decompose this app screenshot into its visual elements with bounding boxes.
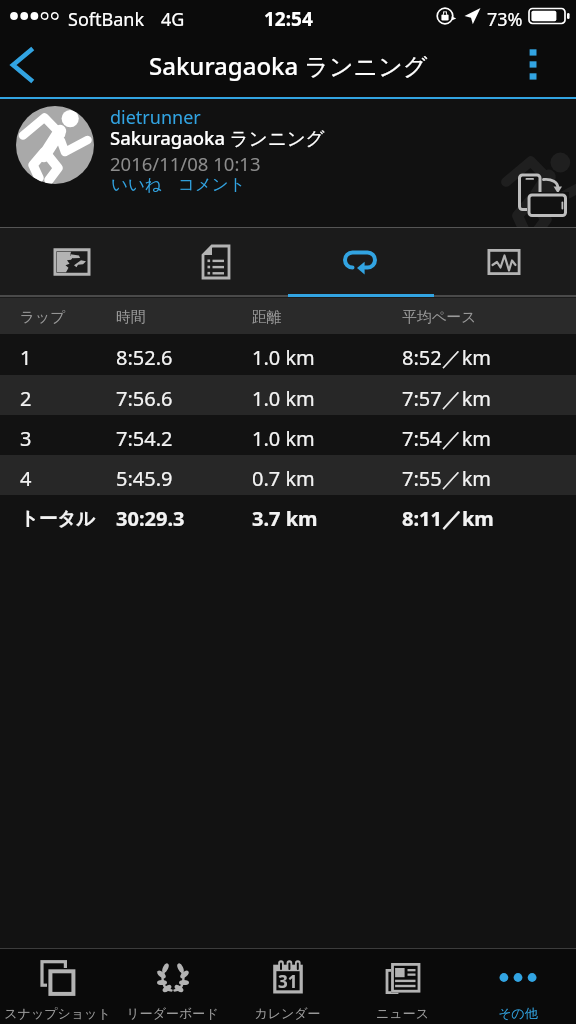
staticText: スナップショット — [4, 1005, 111, 1021]
staticText: 7:56.6 — [116, 385, 173, 412]
staticText: Sakuragaoka ランニング — [149, 49, 428, 82]
staticText: 73% — [487, 7, 523, 32]
staticText: その他 — [498, 1005, 538, 1021]
button[interactable]: Rotate screen — [516, 172, 570, 220]
staticText: リーダーボード — [126, 1005, 219, 1021]
button[interactable]: その他 — [460, 949, 575, 1024]
staticText: 7:54／km — [402, 425, 492, 452]
staticText: SoftBank — [68, 7, 144, 32]
button[interactable]: Laps — [288, 228, 432, 294]
button[interactable]: More options — [505, 36, 561, 97]
staticText: 4 — [20, 465, 32, 492]
button[interactable]: Summary — [144, 228, 288, 294]
button[interactable]: リーダーボード — [115, 949, 230, 1024]
staticText: 8:11／km — [402, 505, 494, 532]
staticText: いいね — [111, 174, 162, 195]
staticText: 8:52／km — [402, 344, 492, 371]
staticText: 平均ペース — [402, 308, 477, 327]
staticText: dietrunner — [110, 105, 201, 130]
staticText: 5:45.9 — [116, 465, 173, 492]
staticText: 31 — [278, 970, 298, 993]
staticText: 7:57／km — [402, 385, 492, 412]
button[interactable]: Back — [0, 36, 54, 97]
staticText: ニュース — [376, 1005, 429, 1021]
staticText: 1.0 km — [252, 344, 315, 371]
staticText: 4G — [161, 7, 185, 32]
staticText: 30:29.3 — [116, 505, 185, 532]
staticText: 0.7 km — [252, 465, 315, 492]
staticText: 3 — [20, 425, 32, 452]
staticText: コメント — [178, 174, 246, 195]
button[interactable]: Heart rate — [432, 228, 576, 294]
staticText: 2016/11/08 10:13 — [110, 151, 261, 176]
staticText: 1 — [20, 344, 32, 371]
staticText: 1.0 km — [252, 425, 315, 452]
staticText: ラップ — [20, 308, 66, 327]
staticText: 距離 — [252, 308, 282, 327]
button[interactable]: コメント — [174, 174, 242, 195]
button[interactable]: 31 — [230, 949, 345, 1024]
staticText: 2 — [20, 385, 32, 412]
button[interactable]: ニュース — [345, 949, 460, 1024]
staticText: 8:52.6 — [116, 344, 173, 371]
button[interactable]: dietrunner — [0, 99, 576, 228]
staticText: 3.7 km — [252, 505, 318, 532]
button[interactable]: スナップショット — [0, 949, 115, 1024]
staticText: 12:54 — [264, 6, 313, 32]
staticText: 1.0 km — [252, 385, 315, 412]
staticText: 時間 — [116, 308, 146, 327]
staticText: カレンダー — [254, 1005, 321, 1021]
staticText: トータル — [20, 507, 95, 530]
button[interactable]: Route map — [0, 228, 144, 294]
staticText: 7:55／km — [402, 465, 492, 492]
button[interactable]: いいね — [107, 174, 158, 195]
staticText: Sakuragaoka ランニング — [110, 125, 325, 150]
staticText: 7:54.2 — [116, 425, 173, 452]
